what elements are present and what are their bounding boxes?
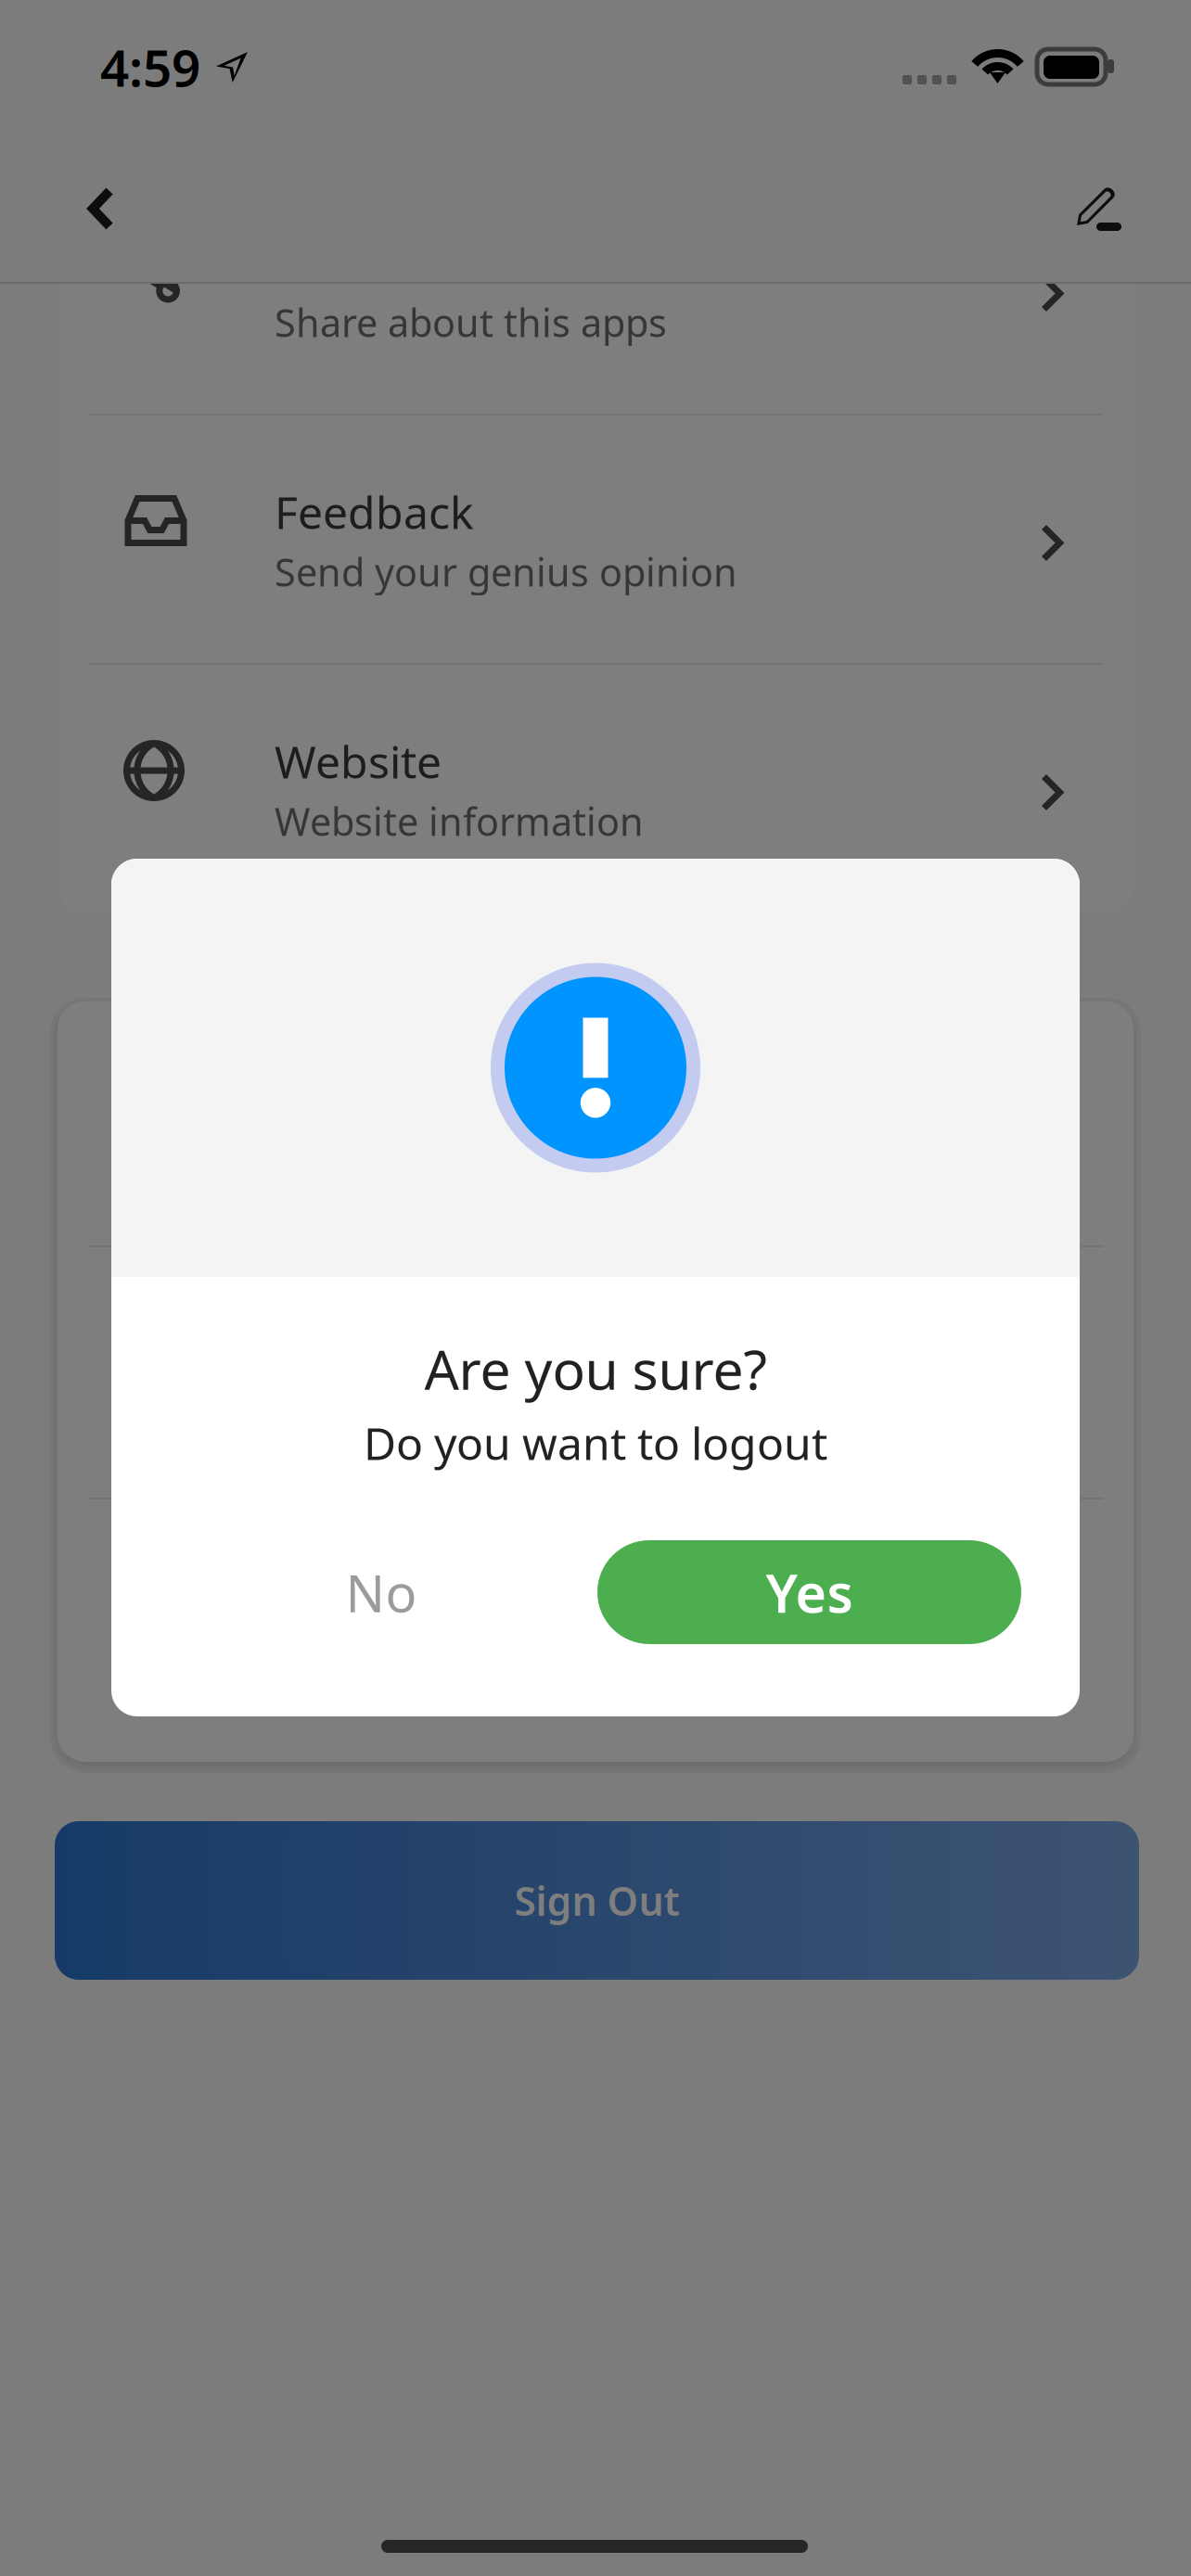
staticText: 4:59 bbox=[100, 33, 200, 101]
button[interactable]: No bbox=[265, 1540, 497, 1644]
button[interactable]: Sign Out bbox=[55, 1821, 1139, 1980]
staticText: Share about this apps bbox=[275, 297, 667, 348]
staticText: No bbox=[346, 1558, 417, 1627]
staticText: Send your genius opinion bbox=[275, 546, 737, 597]
staticText: Website bbox=[275, 732, 442, 791]
button[interactable]: Feedback bbox=[58, 415, 1133, 663]
button[interactable]: Back bbox=[41, 148, 161, 269]
staticText: Yes bbox=[766, 1557, 853, 1627]
button[interactable]: Yes bbox=[597, 1540, 1021, 1644]
staticText: Are you sure? bbox=[424, 1333, 767, 1405]
staticText: Website information bbox=[275, 796, 644, 847]
button[interactable]: Website bbox=[58, 665, 1133, 912]
staticText: Do you want to logout bbox=[364, 1413, 827, 1472]
staticText: Sign Out bbox=[514, 1874, 679, 1927]
staticText: Feedback bbox=[275, 482, 474, 541]
staticText: Share bbox=[275, 233, 394, 292]
button[interactable]: Edit bbox=[1039, 148, 1159, 269]
button[interactable]: Share bbox=[58, 166, 1133, 414]
